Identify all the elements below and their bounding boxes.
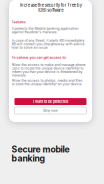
staticText: Skip now (43, 108, 58, 113)
staticText: Allow the access to make and manage phon… (11, 63, 85, 77)
staticText: I want to be protected (33, 99, 68, 104)
staticText: Allow the access to photos, media and fi… (11, 78, 82, 86)
staticText: Increase the security for free by IDBI s… (19, 2, 81, 13)
staticText: Features: (11, 20, 26, 24)
staticText: It protects the Mobile banking applicati… (11, 26, 78, 34)
button[interactable]: I want to be protected (14, 98, 86, 105)
staticText: Secure mobile banking (11, 144, 69, 163)
button[interactable]: Skip now (14, 107, 86, 114)
staticText: In case of any threat, it alerts KB imme… (11, 38, 85, 50)
staticText: To various you can get access to: (11, 55, 66, 59)
